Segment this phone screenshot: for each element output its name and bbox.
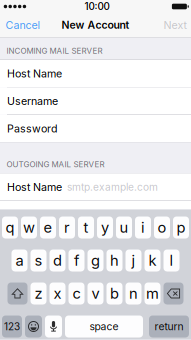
- staticText: k: [148, 252, 156, 269]
- button[interactable]: b: [106, 282, 122, 304]
- button[interactable]: Username: [0, 87, 191, 114]
- button[interactable]: h: [106, 249, 122, 271]
- staticText: z: [34, 285, 42, 302]
- button[interactable]: v: [87, 282, 103, 304]
- button[interactable]: d: [49, 249, 65, 271]
- staticText: y: [101, 219, 109, 236]
- button[interactable]: Password: [0, 115, 191, 142]
- staticText: i: [141, 219, 145, 236]
- button[interactable]: Next: [145, 13, 191, 37]
- button[interactable]: Delete: [163, 282, 183, 304]
- button[interactable]: Shift: [7, 282, 27, 304]
- staticText: u: [119, 219, 128, 236]
- button[interactable]: k: [144, 249, 160, 271]
- staticText: j: [131, 252, 135, 269]
- staticText: q: [5, 219, 14, 236]
- button[interactable]: x: [49, 282, 65, 304]
- button[interactable]: t: [78, 216, 94, 238]
- button[interactable]: o: [154, 216, 170, 238]
- button[interactable]: f: [68, 249, 84, 271]
- staticText: l: [169, 252, 173, 269]
- staticText: w: [23, 219, 35, 236]
- staticText: n: [129, 285, 138, 302]
- button[interactable]: u: [116, 216, 132, 238]
- staticText: OUTGOING MAIL SERVER: [6, 160, 104, 169]
- staticText: Username: [7, 95, 58, 107]
- staticText: g: [91, 252, 100, 269]
- staticText: o: [157, 219, 166, 236]
- staticText: a: [15, 252, 23, 269]
- staticText: Password: [7, 122, 58, 135]
- button[interactable]: return: [149, 315, 189, 337]
- button[interactable]: a: [11, 249, 27, 271]
- staticText: 10:00: [84, 1, 109, 12]
- staticText: v: [91, 285, 99, 302]
- staticText: Host Name: [7, 67, 62, 80]
- button[interactable]: Cancel: [0, 13, 46, 37]
- button[interactable]: p: [173, 216, 189, 238]
- staticText: return: [154, 320, 183, 333]
- staticText: 123: [4, 321, 20, 332]
- button[interactable]: j: [125, 249, 141, 271]
- staticText: space: [89, 320, 118, 333]
- button[interactable]: m: [144, 282, 160, 304]
- staticText: m: [146, 285, 159, 302]
- staticText: s: [34, 252, 42, 269]
- button[interactable]: q: [2, 216, 18, 238]
- button[interactable]: y: [97, 216, 113, 238]
- button[interactable]: 123: [2, 315, 22, 337]
- button[interactable]: Host Name: [0, 173, 191, 200]
- button[interactable]: z: [30, 282, 46, 304]
- staticText: x: [53, 285, 61, 302]
- button[interactable]: s: [30, 249, 46, 271]
- staticText: smtp.example.com: [67, 181, 158, 193]
- staticText: b: [110, 285, 119, 302]
- staticText: t: [83, 219, 88, 236]
- staticText: c: [72, 285, 80, 302]
- staticText: Cancel: [5, 19, 40, 31]
- button[interactable]: space: [65, 315, 143, 337]
- button[interactable]: l: [163, 249, 179, 271]
- button[interactable]: Emoji: [25, 315, 42, 337]
- staticText: d: [53, 252, 62, 269]
- button[interactable]: w: [21, 216, 37, 238]
- button[interactable]: i: [135, 216, 151, 238]
- button[interactable]: e: [40, 216, 56, 238]
- staticText: INCOMING MAIL SERVER: [6, 46, 102, 55]
- staticText: h: [110, 252, 119, 269]
- staticText: Host Name: [7, 181, 62, 193]
- staticText: e: [43, 219, 52, 236]
- button[interactable]: n: [125, 282, 141, 304]
- staticText: r: [64, 219, 70, 236]
- staticText: Next: [163, 19, 186, 31]
- button[interactable]: c: [68, 282, 84, 304]
- button[interactable]: g: [87, 249, 103, 271]
- staticText: p: [176, 219, 185, 236]
- button[interactable]: Dictation: [45, 315, 62, 337]
- staticText: f: [74, 252, 79, 269]
- button[interactable]: r: [59, 216, 75, 238]
- button[interactable]: Host Name: [0, 60, 191, 87]
- staticText: New Account: [61, 19, 129, 31]
